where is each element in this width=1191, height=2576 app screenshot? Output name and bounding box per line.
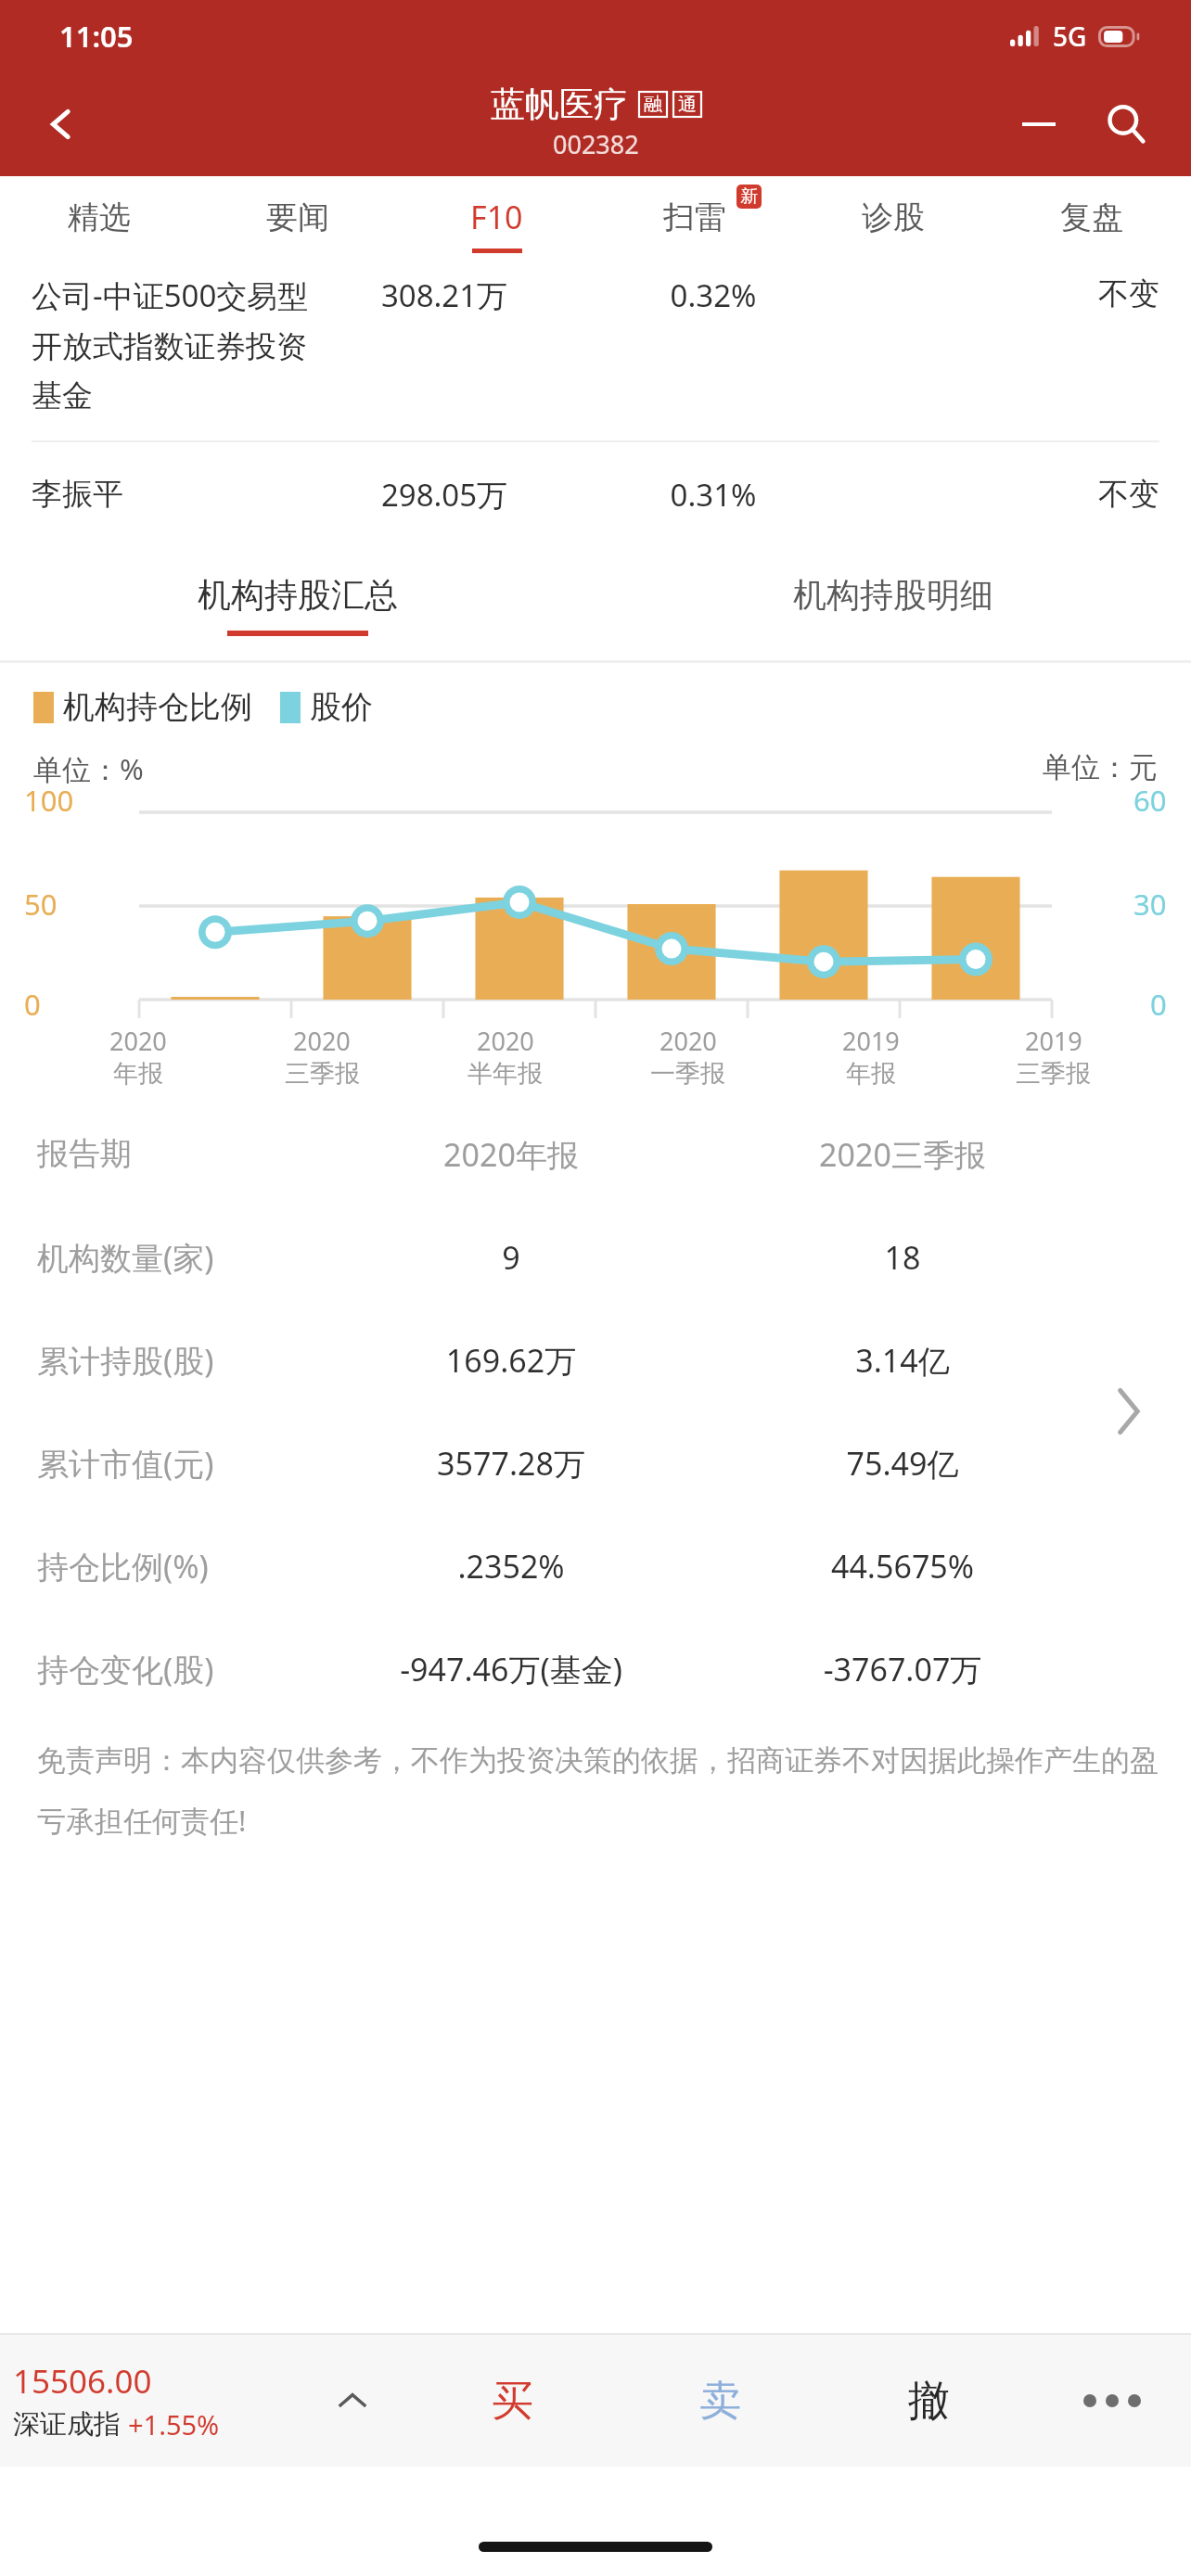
staticText: 年报 (846, 1058, 896, 1090)
staticText: 持仓变化(股) (37, 1648, 315, 1690)
staticText: 卖 (699, 2375, 741, 2428)
staticText: 单位：元 (1043, 749, 1158, 785)
staticText: 一季报 (650, 1058, 725, 1090)
staticText: 李振平 (32, 475, 310, 514)
button[interactable]: 精选 (0, 176, 198, 265)
staticText: 75.49亿 (707, 1442, 1098, 1485)
staticText: 三季报 (1016, 1058, 1091, 1090)
staticText: 2019 (1025, 1024, 1082, 1058)
button[interactable]: Minimize (1004, 89, 1074, 159)
staticText: -947.46万(基金) (315, 1648, 707, 1690)
staticText: 持仓比例(%) (37, 1545, 315, 1588)
staticText: 要闻 (266, 198, 329, 237)
button[interactable]: 复盘 (992, 176, 1191, 265)
staticText: 2020三季报 (707, 1133, 1098, 1176)
button[interactable]: 机构持股汇总 (0, 546, 595, 663)
button[interactable]: F10 (397, 176, 595, 265)
staticText: 0.32% (579, 274, 848, 316)
staticText: 2020年报 (315, 1133, 707, 1176)
staticText: 复盘 (1060, 198, 1123, 237)
button[interactable]: More details (1089, 1372, 1167, 1450)
staticText: 诊股 (862, 198, 925, 237)
button[interactable]: 机构持股明细 (595, 546, 1191, 663)
button[interactable]: 诊股 (794, 176, 992, 265)
button[interactable]: Back (22, 85, 100, 163)
staticText: 002382 (553, 127, 639, 161)
staticText: 报告期 (37, 1134, 315, 1174)
staticText: 44.5675% (707, 1545, 1098, 1588)
staticText: 9 (315, 1236, 707, 1279)
button[interactable]: Search (1089, 87, 1163, 161)
staticText: 0.31% (579, 474, 848, 516)
button[interactable]: 卖 (616, 2335, 825, 2467)
staticText: 免责声明：本内容仅供参考，不作为投资决策的依据，招商证券不对因据此操作产生的盈亏… (37, 1742, 1159, 1840)
staticText: 不变 (848, 274, 1159, 313)
button[interactable]: Expand index panel (297, 2335, 408, 2467)
staticText: 3.14亿 (707, 1339, 1098, 1382)
staticText: 买 (492, 2375, 533, 2428)
staticText: 0 (24, 985, 41, 1024)
staticText: 机构持股汇总 (198, 574, 398, 616)
staticText: 15506.00 (13, 2359, 152, 2404)
staticText: 2020 (109, 1024, 167, 1058)
staticText: 单位：% (33, 749, 144, 788)
staticText: 308.21万 (310, 274, 579, 316)
staticText: 2020 (293, 1024, 351, 1058)
staticText: 深证成指 (13, 2407, 121, 2442)
staticText: 18 (707, 1236, 1098, 1279)
staticText: 累计持股(股) (37, 1339, 315, 1382)
button[interactable]: 扫雷 (595, 176, 794, 265)
staticText: 60 (1133, 781, 1167, 820)
staticText: 不变 (848, 475, 1159, 514)
staticText: -3767.07万 (707, 1648, 1098, 1690)
staticText: 精选 (68, 198, 131, 237)
staticText: +1.55% (128, 2406, 220, 2442)
staticText: 三季报 (285, 1058, 360, 1090)
staticText: 公司-中证500交易型开放式指数证券投资基金 (32, 274, 310, 414)
staticText: 蓝帆医疗 (491, 83, 628, 126)
staticText: F10 (470, 196, 523, 238)
staticText: 股价 (310, 687, 373, 727)
staticText: 30 (1133, 885, 1167, 924)
staticText: 机构数量(家) (37, 1236, 315, 1279)
staticText: 机构持股明细 (793, 574, 993, 616)
button[interactable]: 撤 (825, 2335, 1033, 2467)
staticText: 2020 (660, 1024, 717, 1058)
staticText: 累计市值(元) (37, 1442, 315, 1485)
staticText: 融 (644, 93, 662, 116)
staticText: 100 (24, 781, 74, 820)
button[interactable]: 买 (408, 2335, 616, 2467)
staticText: 5G (1053, 19, 1087, 54)
staticText: 0 (1150, 985, 1167, 1024)
staticText: 机构持仓比例 (63, 687, 252, 727)
staticText: 2020 (477, 1024, 534, 1058)
button[interactable]: More (1033, 2335, 1191, 2467)
staticText: 2019 (842, 1024, 900, 1058)
staticText: 50 (24, 885, 58, 924)
button[interactable]: 要闻 (198, 176, 397, 265)
staticText: 年报 (113, 1058, 163, 1090)
staticText: 新 (740, 185, 758, 208)
staticText: 11:05 (59, 17, 134, 56)
staticText: 169.62万 (315, 1339, 707, 1382)
staticText: 扫雷 (663, 198, 726, 237)
staticText: 298.05万 (310, 474, 579, 516)
staticText: 3577.28万 (315, 1442, 707, 1485)
staticText: .2352% (315, 1545, 707, 1588)
button[interactable]: 15506.00 (13, 2359, 297, 2442)
staticText: 半年报 (467, 1058, 543, 1090)
staticText: 撤 (908, 2375, 950, 2428)
staticText: 通 (678, 93, 697, 116)
